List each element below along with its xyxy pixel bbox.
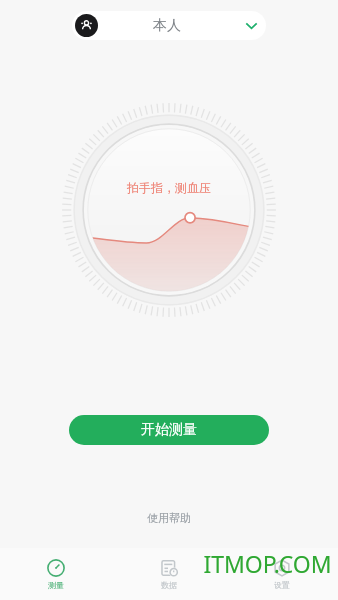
staticText: ITMOP.COM <box>203 548 332 579</box>
button[interactable]: 本人 <box>72 11 266 40</box>
staticText: 本人 <box>153 17 181 35</box>
staticText: 使用帮助 <box>147 511 191 525</box>
button[interactable]: 开始测量 <box>69 415 269 445</box>
staticText: 数据 <box>161 580 177 590</box>
button[interactable]: 使用帮助 <box>137 506 201 530</box>
button[interactable]: 数据 <box>112 548 225 600</box>
staticText: 开始测量 <box>141 421 197 439</box>
staticText: 测量 <box>48 580 64 590</box>
button[interactable]: Expand person selector <box>236 11 266 40</box>
staticText: 设置 <box>274 580 290 590</box>
button[interactable]: 测量 <box>0 548 112 600</box>
staticText: 拍手指，测血压 <box>127 180 211 195</box>
button[interactable]: 设置 <box>225 548 338 600</box>
